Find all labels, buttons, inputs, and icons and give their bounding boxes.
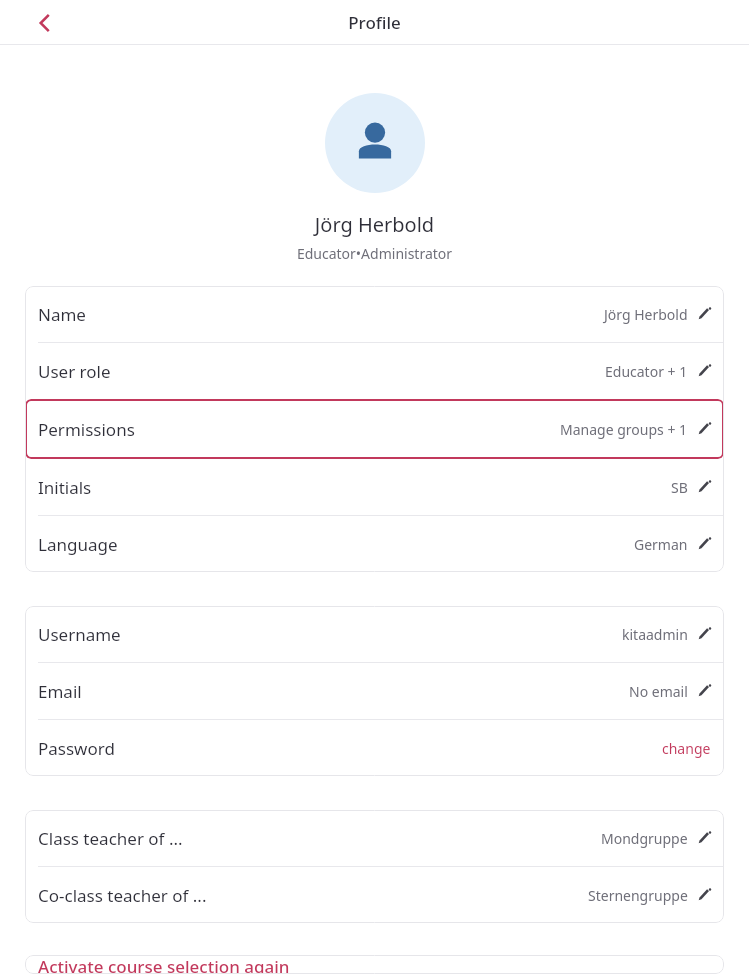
staticText: German	[634, 535, 688, 554]
staticText: Manage groups + 1	[560, 420, 688, 439]
staticText: Jörg Herbold	[0, 211, 749, 238]
button[interactable]: Class teacher of ...	[25, 810, 724, 866]
button[interactable]: Permissions	[25, 399, 724, 459]
button[interactable]: Email	[25, 663, 724, 719]
staticText: Educator + 1	[605, 362, 688, 381]
button[interactable]: Activate course selection again	[25, 955, 724, 974]
staticText: No email	[629, 682, 688, 701]
staticText: Mondgruppe	[601, 829, 688, 848]
staticText: Profile	[348, 11, 401, 34]
staticText: Co-class teacher of ...	[38, 884, 207, 907]
button[interactable]: Password	[25, 720, 724, 776]
staticText: Username	[38, 623, 121, 646]
staticText: Initials	[38, 476, 92, 499]
button[interactable]: Profile picture	[325, 93, 425, 193]
staticText: change	[662, 739, 711, 758]
button[interactable]: Username	[25, 606, 724, 662]
button[interactable]: Name	[25, 286, 724, 342]
staticText: kitaadmin	[622, 625, 688, 644]
staticText: Educator•Administrator	[0, 244, 749, 263]
staticText: User role	[38, 360, 111, 383]
button[interactable]: Co-class teacher of ...	[25, 867, 724, 923]
button[interactable]: Back	[24, 2, 66, 44]
staticText: Class teacher of ...	[38, 827, 183, 850]
button[interactable]: Initials	[25, 459, 724, 515]
staticText: Activate course selection again	[38, 955, 290, 974]
staticText: Permissions	[38, 418, 135, 441]
staticText: SB	[671, 478, 688, 497]
staticText: Language	[38, 533, 118, 556]
staticText: Jörg Herbold	[604, 305, 688, 324]
staticText: Name	[38, 303, 86, 326]
button[interactable]: Language	[25, 516, 724, 572]
staticText: Password	[38, 737, 115, 760]
staticText: Email	[38, 680, 82, 703]
staticText: Sternengruppe	[588, 886, 688, 905]
button[interactable]: User role	[25, 343, 724, 399]
